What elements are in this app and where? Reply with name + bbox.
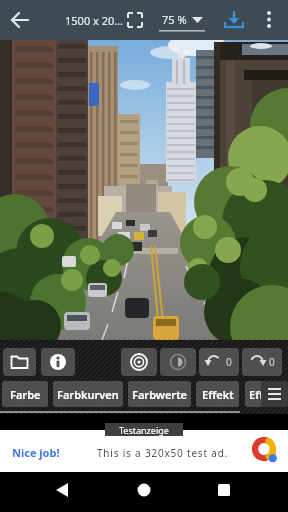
staticText: This is a 320x50 test ad. (97, 446, 229, 460)
button[interactable] (160, 348, 196, 376)
staticText: 1500 x 20… (65, 13, 123, 28)
button[interactable]: 0 (242, 348, 282, 376)
button[interactable]: 75 % (156, 6, 208, 34)
staticText: Farbkurven (57, 387, 119, 402)
button[interactable]: 0 (199, 348, 239, 376)
button[interactable] (261, 381, 288, 407)
button[interactable] (3, 348, 36, 376)
staticText: Nice job! (12, 445, 60, 460)
staticText: 75 % (162, 12, 187, 27)
button[interactable]: Effekt (196, 381, 239, 407)
staticText: Farbwerte (132, 387, 188, 402)
button[interactable] (128, 476, 160, 508)
staticText: 0 (226, 355, 232, 369)
button[interactable]: Farbkurven (53, 381, 123, 407)
button[interactable]: Testanzeige (0, 430, 288, 472)
button[interactable] (208, 476, 240, 508)
button[interactable] (222, 8, 246, 32)
button[interactable]: Eff (245, 381, 267, 407)
staticText: Effekt (202, 387, 234, 402)
button[interactable] (126, 11, 146, 31)
staticText: Farbe (10, 387, 41, 402)
staticText: Eff (249, 387, 264, 402)
button[interactable]: Farbe (2, 381, 48, 407)
button[interactable] (121, 348, 157, 376)
button[interactable] (48, 476, 80, 508)
staticText: 0 (269, 355, 275, 369)
button[interactable] (258, 6, 280, 34)
button[interactable] (41, 348, 75, 376)
staticText: Testanzeige (119, 424, 169, 436)
button[interactable] (6, 6, 34, 34)
button[interactable]: Farbwerte (128, 381, 191, 407)
